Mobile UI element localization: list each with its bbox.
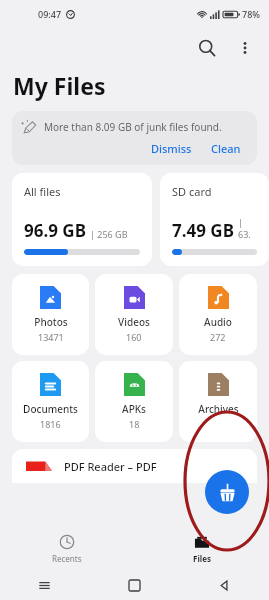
button[interactable]: More options <box>227 30 263 66</box>
button[interactable]: Audio <box>179 274 257 355</box>
staticText: APKs <box>122 402 146 416</box>
button[interactable]: SD card <box>160 173 269 266</box>
staticText: More than 8.09 GB of junk files found. <box>44 120 222 134</box>
button[interactable]: PDF Reader – PDF <box>12 449 257 483</box>
staticText: 1816 <box>40 418 61 430</box>
staticText: Videos <box>118 315 150 329</box>
staticText: Files <box>193 553 211 564</box>
staticText: All files <box>24 184 61 199</box>
staticText: Audio <box>204 315 232 329</box>
staticText: 96.9 GB <box>24 219 86 242</box>
staticText: Dismiss <box>151 141 192 156</box>
button[interactable]: Back <box>179 570 269 600</box>
staticText: SD card <box>172 184 212 199</box>
staticText: My Files <box>13 70 106 101</box>
button[interactable]: Files <box>134 528 269 570</box>
button[interactable]: APKs <box>95 361 173 442</box>
button[interactable]: Videos <box>95 274 173 355</box>
button[interactable]: Recent apps <box>0 570 89 600</box>
button[interactable]: Archives <box>179 361 257 442</box>
staticText: 18 <box>129 418 140 430</box>
staticText: 160 <box>126 331 142 343</box>
staticText: Recents <box>52 553 82 564</box>
button[interactable]: More than 8.09 GB of junk files found. <box>12 111 257 165</box>
staticText: | 256 GB <box>90 228 128 240</box>
staticText: 13471 <box>38 331 64 343</box>
staticText: 78% <box>242 8 260 20</box>
staticText: 09:47 <box>38 8 62 20</box>
staticText: | 63. <box>238 216 257 240</box>
button[interactable]: Clean <box>206 138 246 159</box>
button[interactable]: Documents <box>12 361 89 442</box>
button[interactable]: Photos <box>12 274 89 355</box>
button[interactable]: Dismiss <box>146 138 197 159</box>
button[interactable]: All files <box>12 173 152 266</box>
button[interactable]: Clean junk files <box>205 470 249 514</box>
staticText: 272 <box>210 331 226 343</box>
staticText: Clean <box>211 141 241 156</box>
staticText: PDF Reader – PDF <box>64 459 157 474</box>
button[interactable]: Search <box>189 30 225 66</box>
button[interactable]: Recents <box>0 528 134 570</box>
staticText: Documents <box>23 402 78 416</box>
staticText: Archives <box>198 402 239 416</box>
staticText: Photos <box>34 315 68 329</box>
button[interactable]: Home <box>89 570 179 600</box>
staticText: 7.49 GB <box>172 219 234 242</box>
